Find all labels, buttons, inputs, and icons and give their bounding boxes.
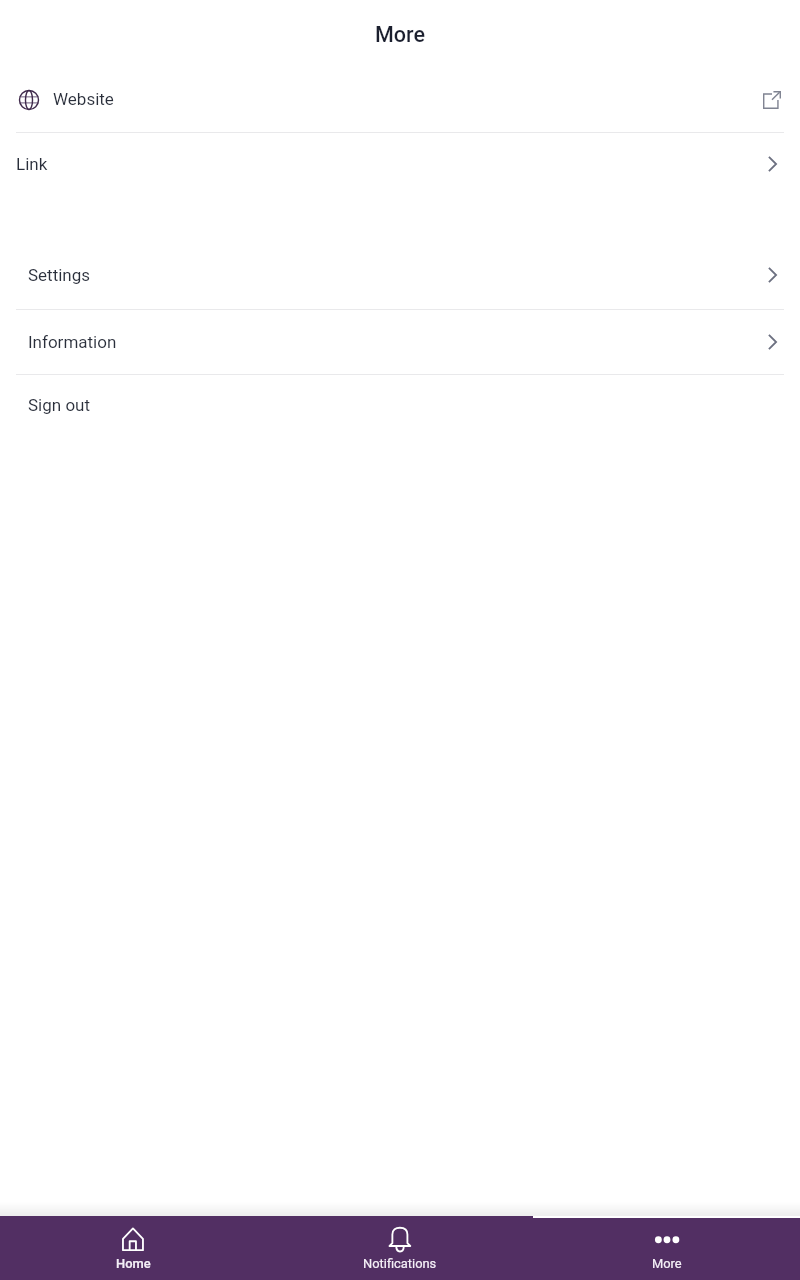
staticText: More <box>652 1256 682 1271</box>
button[interactable]: Information <box>0 310 800 374</box>
staticText: More <box>375 22 425 47</box>
other: Open Information <box>768 334 777 350</box>
staticText: Notifications <box>363 1256 437 1271</box>
button[interactable]: Link <box>0 133 800 196</box>
other: Notifications <box>387 1226 413 1252</box>
button[interactable]: Notifications <box>266 1216 533 1280</box>
other: More <box>654 1226 680 1252</box>
staticText: Information <box>28 332 117 352</box>
staticText: Home <box>116 1256 151 1271</box>
other: Open Settings <box>768 267 777 283</box>
button[interactable]: Settings <box>0 244 800 309</box>
button[interactable]: Sign out <box>0 375 800 440</box>
other: Open link <box>768 156 777 172</box>
staticText: Website <box>53 89 114 109</box>
staticText: Sign out <box>28 395 91 415</box>
other: Open website <box>763 91 781 109</box>
other: Home <box>120 1226 146 1252</box>
button[interactable]: More <box>533 1216 800 1280</box>
staticText: Link <box>16 154 48 174</box>
button[interactable]: Website <box>0 68 800 132</box>
staticText: Settings <box>28 265 91 285</box>
button[interactable]: Home <box>0 1216 266 1280</box>
